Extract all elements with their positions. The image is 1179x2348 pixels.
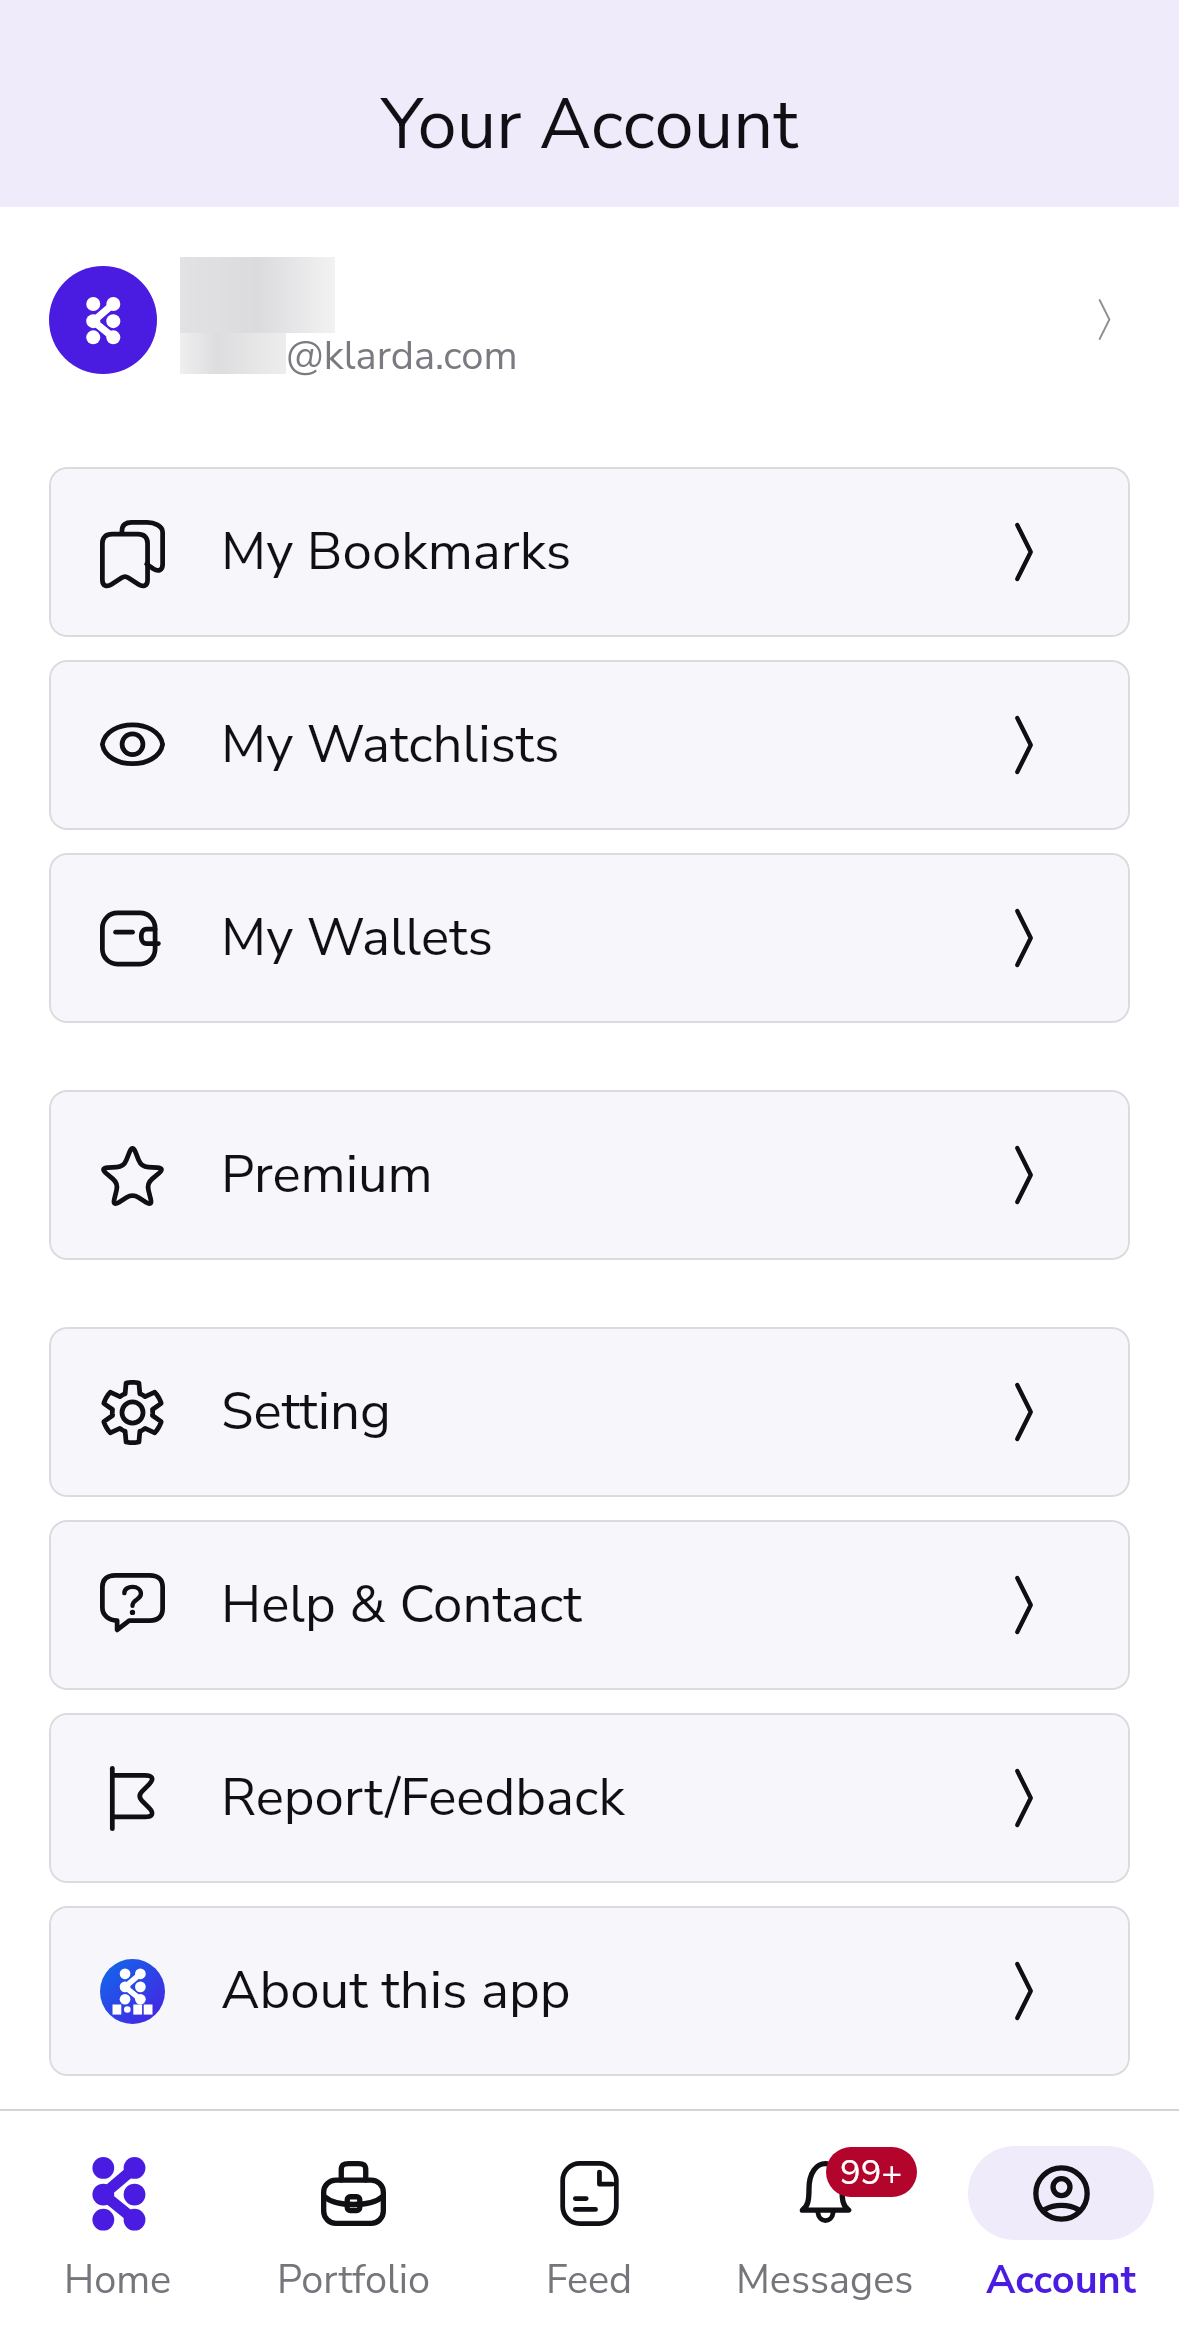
button[interactable]: My Watchlists [49, 660, 1130, 830]
button[interactable]: Messages [707, 2111, 943, 2307]
button[interactable]: @klarda.com [0, 207, 1179, 432]
staticText: Messages [736, 2253, 914, 2307]
button[interactable]: Premium [49, 1090, 1130, 1260]
staticText: My Watchlists [221, 709, 560, 781]
staticText: Home [64, 2253, 172, 2307]
button[interactable]: Report/Feedback [49, 1713, 1130, 1883]
staticText: Report/Feedback [221, 1762, 625, 1834]
button[interactable]: Portfolio [235, 2111, 471, 2307]
staticText: My Bookmarks [221, 516, 572, 588]
button[interactable]: Account [943, 2111, 1179, 2307]
staticText: Setting [221, 1376, 391, 1448]
button[interactable]: About this app [49, 1906, 1130, 2076]
staticText: Your Account [381, 77, 798, 173]
staticText: My Wallets [221, 902, 493, 974]
staticText: 99+ [840, 2149, 903, 2196]
staticText: Feed [546, 2253, 633, 2307]
staticText: Premium [221, 1139, 433, 1211]
staticText: @klarda.com [286, 329, 518, 383]
staticText: Account [986, 2253, 1136, 2307]
button[interactable]: My Wallets [49, 853, 1130, 1023]
button[interactable]: Home [0, 2111, 235, 2307]
button[interactable]: Feed [471, 2111, 707, 2307]
staticText: Help & Contact [221, 1569, 582, 1641]
button[interactable]: Help & Contact [49, 1520, 1130, 1690]
button[interactable]: Setting [49, 1327, 1130, 1497]
staticText: Portfolio [277, 2253, 430, 2307]
staticText: About this app [221, 1955, 571, 2027]
button[interactable]: My Bookmarks [49, 467, 1130, 637]
